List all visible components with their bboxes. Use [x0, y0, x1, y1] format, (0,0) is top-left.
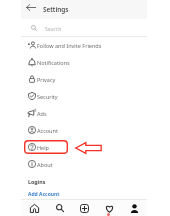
button[interactable]: New post [72, 200, 97, 216]
button[interactable] [21, 139, 147, 156]
button[interactable] [21, 88, 147, 105]
button[interactable] [21, 122, 147, 139]
staticText: Search [45, 25, 62, 32]
button[interactable] [21, 37, 147, 54]
staticText: About [37, 161, 53, 168]
staticText: Logins [28, 178, 46, 185]
button[interactable]: Profile [122, 200, 147, 216]
staticText: Notifications [37, 59, 70, 66]
staticText: Add Account [28, 191, 60, 198]
button[interactable] [21, 105, 147, 122]
button[interactable] [21, 71, 147, 88]
button[interactable] [21, 19, 147, 37]
staticText: Help [37, 144, 49, 151]
button[interactable]: Search [47, 200, 72, 216]
button[interactable]: Home [21, 200, 47, 216]
staticText: Follow and Invite Friends [37, 42, 102, 49]
staticText: Privacy [37, 76, 56, 83]
button[interactable]: Back [23, 1, 38, 16]
staticText: Security [37, 93, 58, 100]
staticText: Settings [43, 5, 69, 14]
button[interactable] [21, 54, 147, 71]
staticText: Ads [37, 110, 47, 117]
button[interactable]: Add Account [28, 191, 60, 198]
button[interactable]: Activity [97, 200, 122, 216]
button[interactable] [21, 156, 147, 173]
staticText: Account [37, 127, 58, 134]
